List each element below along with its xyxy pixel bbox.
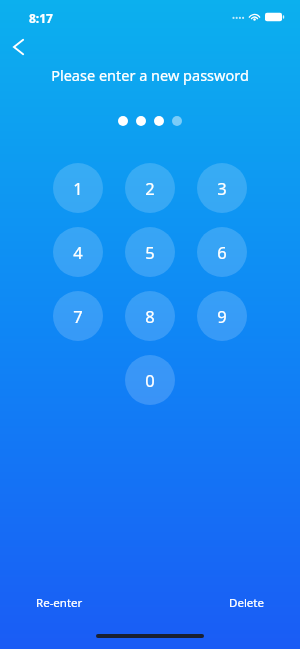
button[interactable]: 1 xyxy=(53,163,103,213)
button[interactable]: 2 xyxy=(125,163,175,213)
button[interactable]: 5 xyxy=(125,227,175,277)
button[interactable]: 8 xyxy=(125,291,175,341)
button[interactable]: 0 xyxy=(125,355,175,405)
staticText: 9 xyxy=(217,305,227,327)
staticText: 5 xyxy=(145,241,155,263)
staticText: 6 xyxy=(217,241,227,263)
staticText: 8 xyxy=(145,305,155,327)
button[interactable]: 3 xyxy=(197,163,247,213)
button[interactable]: 7 xyxy=(53,291,103,341)
button[interactable]: Back xyxy=(4,33,32,61)
staticText: 1 xyxy=(73,177,83,199)
staticText: 7 xyxy=(73,305,83,327)
button[interactable]: Re-enter xyxy=(30,591,89,615)
staticText: Re-enter xyxy=(36,595,83,611)
button[interactable]: Delete xyxy=(223,591,270,615)
button[interactable]: 4 xyxy=(53,227,103,277)
staticText: 8:17 xyxy=(29,10,53,26)
button[interactable]: 6 xyxy=(197,227,247,277)
staticText: Please enter a new password xyxy=(51,65,249,85)
staticText: 2 xyxy=(145,177,155,199)
staticText: 3 xyxy=(217,177,227,199)
staticText: 4 xyxy=(73,241,83,263)
staticText: 0 xyxy=(145,369,155,391)
staticText: Delete xyxy=(229,595,264,611)
button[interactable]: 9 xyxy=(197,291,247,341)
